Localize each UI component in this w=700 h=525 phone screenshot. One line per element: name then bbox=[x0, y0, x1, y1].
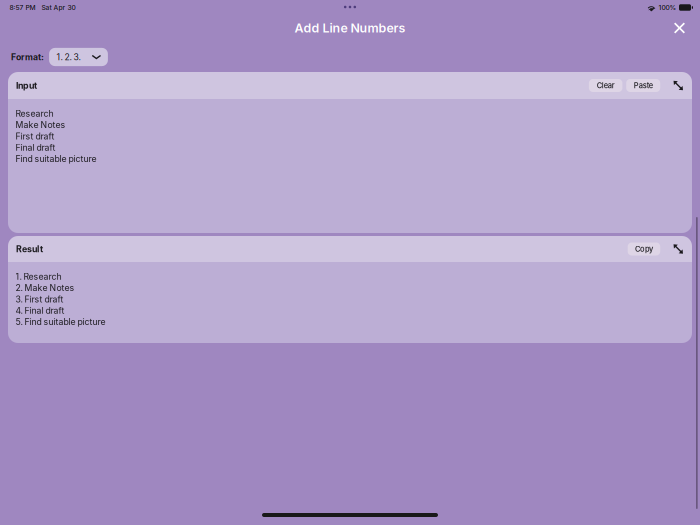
button[interactable]: Expand Result bbox=[673, 241, 683, 257]
staticText: Paste bbox=[634, 81, 653, 90]
staticText: Copy bbox=[635, 244, 653, 253]
staticText: Result bbox=[16, 244, 43, 254]
button[interactable]: Close bbox=[667, 16, 691, 40]
staticText: Make Notes bbox=[15, 120, 65, 130]
button[interactable]: Expand Input bbox=[673, 77, 683, 93]
button[interactable]: Clear bbox=[589, 79, 622, 92]
staticText: 1. 2. 3. bbox=[57, 52, 81, 62]
staticText: 3. First draft bbox=[15, 294, 63, 304]
staticText: First draft bbox=[15, 131, 54, 141]
staticText: Format: bbox=[11, 52, 44, 62]
staticText: 4. Final draft bbox=[15, 305, 64, 316]
staticText: 2. Make Notes bbox=[15, 283, 74, 293]
staticText: 1. Research bbox=[15, 271, 61, 282]
staticText: Sat Apr 30 bbox=[42, 3, 76, 12]
button[interactable]: Paste bbox=[626, 79, 660, 92]
staticText: Add Line Numbers bbox=[294, 20, 405, 35]
button[interactable]: 1. 2. 3. bbox=[49, 48, 108, 66]
staticText: Input bbox=[16, 80, 37, 91]
staticText: 8:57 PM bbox=[10, 3, 36, 12]
staticText: 100% bbox=[658, 3, 676, 12]
staticText: Clear bbox=[597, 81, 615, 90]
staticText: 5. Find suitable picture bbox=[15, 317, 105, 327]
button[interactable]: Copy bbox=[628, 242, 660, 255]
staticText: Find suitable picture bbox=[15, 154, 96, 164]
staticText: Research bbox=[15, 108, 53, 119]
staticText: Final draft bbox=[15, 142, 55, 153]
